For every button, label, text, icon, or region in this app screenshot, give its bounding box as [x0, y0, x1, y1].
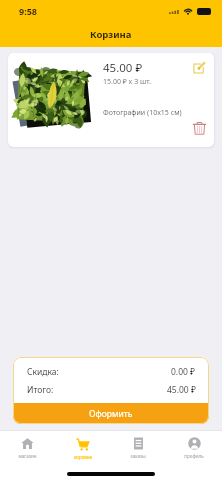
- staticText: 0.00 ₽: [171, 366, 196, 378]
- staticText: 15.00 ₽ x 3 шт.: [103, 77, 152, 87]
- staticText: Оформить: [89, 408, 133, 420]
- staticText: Фотографии (10x15 см): [103, 108, 182, 118]
- staticText: профиль: [184, 453, 204, 459]
- staticText: магазин: [18, 453, 37, 459]
- button[interactable]: профиль: [166, 431, 222, 465]
- staticText: корзина: [74, 454, 92, 460]
- staticText: Скидка:: [27, 366, 59, 378]
- staticText: Корзина: [90, 28, 132, 41]
- button[interactable]: 45.00 ₽: [8, 53, 214, 147]
- button[interactable]: магазин: [0, 431, 55, 465]
- button[interactable]: Оформить: [13, 403, 209, 424]
- staticText: заказы: [130, 453, 146, 459]
- button[interactable]: Изменить: [191, 60, 207, 76]
- staticText: Итого:: [27, 384, 54, 396]
- staticText: 45.00 ₽: [167, 384, 196, 396]
- staticText: 45.00 ₽: [103, 60, 143, 76]
- button[interactable]: корзина: [55, 431, 110, 465]
- staticText: 9:58: [19, 5, 37, 17]
- button[interactable]: заказы: [110, 431, 166, 465]
- button[interactable]: Удалить: [191, 120, 208, 137]
